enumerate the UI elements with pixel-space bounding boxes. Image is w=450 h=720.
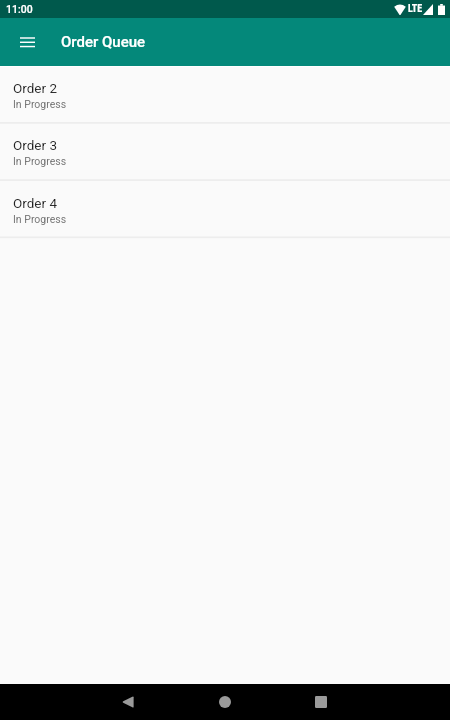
staticText: In Progress (13, 98, 67, 110)
staticText: LTE (408, 3, 423, 15)
staticText: Order 4 (13, 195, 58, 211)
staticText: Order 3 (13, 137, 58, 153)
button[interactable]: Order 3 (0, 124, 450, 181)
staticText: In Progress (13, 213, 67, 225)
button[interactable]: Recent apps (303, 684, 339, 720)
staticText: Order 2 (13, 80, 58, 96)
staticText: In Progress (13, 155, 67, 167)
button[interactable]: Order 4 (0, 182, 450, 239)
button[interactable]: Open navigation menu (7, 22, 47, 62)
staticText: Order Queue (61, 33, 146, 51)
staticText: 11:00 (6, 3, 33, 15)
button[interactable]: Back (110, 684, 146, 720)
button[interactable]: Home (207, 684, 243, 720)
button[interactable]: Order 2 (0, 67, 450, 124)
